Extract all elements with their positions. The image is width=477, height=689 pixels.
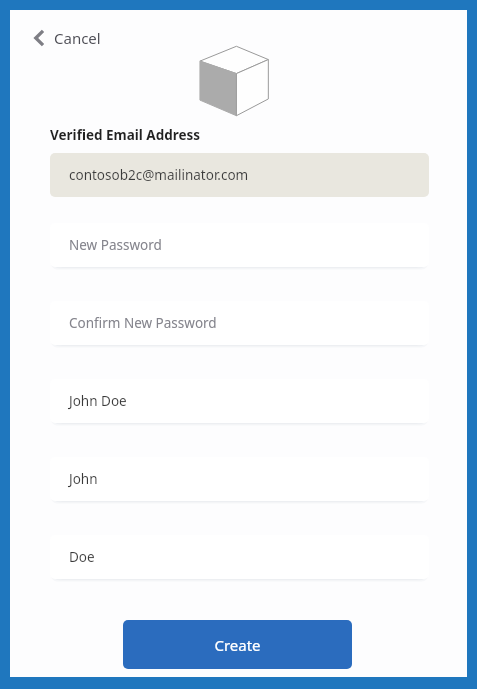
staticText: John Doe	[69, 392, 127, 410]
button[interactable]: contosob2c@mailinator.com	[50, 153, 429, 197]
staticText: Cancel	[54, 28, 101, 48]
button[interactable]: John	[50, 457, 429, 501]
button[interactable]: Create	[123, 620, 352, 669]
button[interactable]: Doe	[50, 535, 429, 579]
staticText: John	[69, 470, 98, 488]
staticText: Doe	[69, 548, 95, 566]
button[interactable]: New Password	[50, 223, 429, 267]
staticText: Create	[214, 635, 261, 655]
button[interactable]: Cancel	[29, 24, 106, 52]
button[interactable]: Confirm New Password	[50, 301, 429, 345]
other: App logo	[195, 42, 271, 120]
staticText: contosob2c@mailinator.com	[69, 166, 249, 184]
staticText: Confirm New Password	[69, 314, 217, 332]
staticText: Verified Email Address	[50, 126, 201, 144]
staticText: New Password	[69, 236, 162, 254]
button[interactable]: John Doe	[50, 379, 429, 423]
